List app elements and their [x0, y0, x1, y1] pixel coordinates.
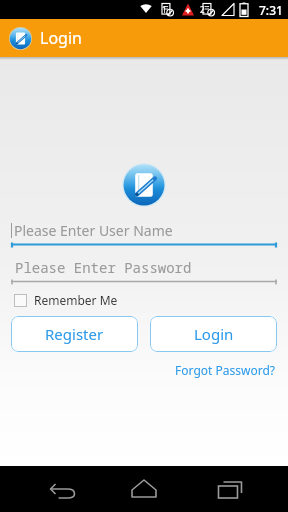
staticText: 1	[162, 4, 167, 15]
button[interactable]: Register	[11, 316, 138, 352]
staticText: Register	[45, 324, 104, 344]
button[interactable]: Recent apps	[192, 466, 288, 512]
staticText: Remember Me	[34, 292, 118, 308]
staticText: 7:31	[259, 2, 283, 18]
button[interactable]: Home	[96, 466, 192, 512]
button[interactable]: Please Enter User Name	[11, 217, 277, 248]
staticText: 2	[200, 4, 205, 15]
button[interactable]: Forgot Password?	[173, 360, 277, 380]
staticText: Please Enter User Name	[14, 221, 173, 240]
staticText: Login	[194, 324, 234, 344]
button[interactable]: Please Enter Password	[11, 254, 277, 285]
staticText: Please Enter Password	[15, 258, 192, 277]
button[interactable]: Remember Me	[14, 292, 118, 308]
button[interactable]: Login	[150, 316, 277, 352]
staticText: Login	[40, 27, 82, 49]
button[interactable]: Back	[0, 466, 96, 512]
